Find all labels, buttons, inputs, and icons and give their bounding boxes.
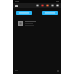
button[interactable]: Action button [16,11,32,15]
button[interactable] [13,19,61,27]
button[interactable]: Tab one [36,4,39,7]
button[interactable]: Action button [42,11,58,15]
button[interactable]: More options [56,4,59,7]
button[interactable]: Filter [51,4,54,7]
button[interactable]: Menu [15,5,18,7]
button[interactable]: Record [41,4,44,7]
button[interactable]: Warnings [46,4,49,7]
